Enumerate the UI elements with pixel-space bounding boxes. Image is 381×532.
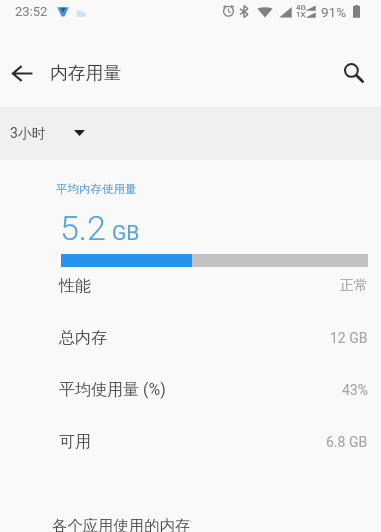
staticText: 总内存 [59, 328, 107, 348]
staticText: 43% [342, 382, 368, 398]
staticText: 平均使用量 (%) [59, 380, 166, 400]
button[interactable]: Search [333, 52, 375, 94]
staticText: 12 GB [330, 330, 368, 346]
button[interactable]: 性能 [0, 260, 381, 312]
staticText: 可用 [59, 432, 91, 452]
other: Downloading [57, 6, 69, 17]
other: Bluetooth on [239, 5, 249, 18]
staticText: 6.8 GB [326, 434, 368, 450]
staticText: 正常 [340, 277, 368, 295]
button[interactable]: 可用 [0, 416, 381, 468]
staticText: 1X [296, 10, 306, 19]
button[interactable]: 总内存 [0, 312, 381, 364]
staticText: 91% [321, 4, 347, 20]
other: Alarm set [222, 4, 235, 17]
staticText: 23:52 [15, 4, 48, 19]
button[interactable]: 平均使用量 (%) [0, 364, 381, 416]
staticText: GB [112, 221, 140, 246]
staticText: 内存用量 [50, 62, 122, 84]
other: Cloud sync [75, 10, 87, 17]
other: Mobile signal [279, 6, 292, 18]
other: Battery 91 percent [353, 5, 360, 18]
button[interactable]: 各个应用使用的内存 [0, 494, 381, 532]
staticText: 3小时 [10, 125, 46, 143]
button[interactable]: 3小时 [0, 107, 381, 160]
staticText: 性能 [59, 276, 91, 296]
button[interactable]: Navigate up [1, 52, 43, 94]
staticText: 平均内存使用量 [56, 182, 137, 196]
staticText: 5.2 [60, 208, 106, 248]
other: Wi-Fi [257, 6, 273, 18]
staticText: 各个应用使用的内存 [52, 516, 191, 532]
staticText: 4G [296, 3, 306, 12]
